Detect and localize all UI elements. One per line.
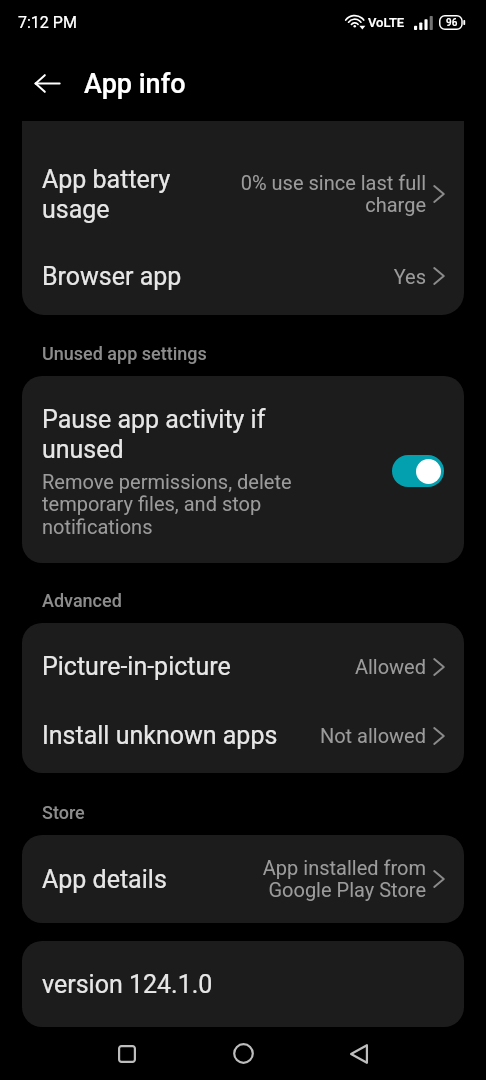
- staticText: version 124.1.0: [42, 970, 213, 999]
- staticText: Picture-in-picture: [42, 652, 280, 681]
- staticText: Not allowed: [280, 724, 426, 747]
- button[interactable]: Pause app activity if unused: [22, 376, 464, 563]
- staticText: Advanced: [42, 590, 122, 611]
- button[interactable]: Home: [215, 1027, 271, 1080]
- staticText: App details: [42, 865, 215, 894]
- button[interactable]: Pause app activity toggle: [392, 455, 444, 487]
- button[interactable]: App battery usage: [22, 121, 464, 245]
- staticText: App battery usage: [42, 165, 219, 224]
- staticText: Unused app settings: [42, 343, 207, 364]
- staticText: 96: [446, 17, 458, 29]
- staticText: Remove permissions, delete temporary fil…: [42, 470, 292, 539]
- button[interactable]: Browser app: [22, 245, 464, 315]
- staticText: Pause app activity if unused: [42, 405, 266, 464]
- staticText: App installed from Google Play Store: [215, 856, 426, 902]
- button[interactable]: Back: [21, 57, 73, 109]
- button[interactable]: version 124.1.0: [22, 941, 464, 1027]
- staticText: 7:12 PM: [18, 13, 77, 32]
- staticText: App info: [84, 68, 186, 100]
- staticText: Install unknown apps: [42, 721, 280, 750]
- staticText: VoLTE: [368, 15, 405, 30]
- button[interactable]: Recent apps: [99, 1027, 155, 1080]
- button[interactable]: Install unknown apps: [22, 698, 464, 773]
- staticText: Store: [42, 802, 85, 823]
- staticText: Allowed: [280, 655, 426, 678]
- button[interactable]: Back: [331, 1027, 387, 1080]
- staticText: 0% use since last full charge: [219, 171, 426, 217]
- button[interactable]: Picture-in-picture: [22, 623, 464, 698]
- button[interactable]: App details: [22, 835, 464, 923]
- staticText: Browser app: [42, 262, 272, 291]
- staticText: Yes: [272, 265, 426, 288]
